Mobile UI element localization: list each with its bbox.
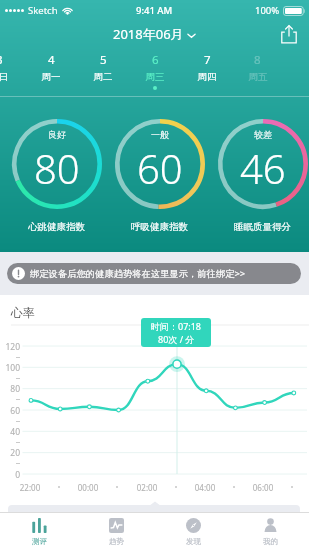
staticText: 时间：07:18 (151, 320, 202, 332)
staticText: 周一 (31, 71, 71, 83)
staticText: 100% (255, 4, 280, 17)
staticText: 5 (100, 52, 107, 68)
staticText: 呼吸健康指数 (131, 221, 188, 233)
staticText: 2018年06月 (113, 25, 184, 43)
staticText: 04:00 (189, 482, 221, 493)
staticText: 睡眠质量得分 (234, 221, 291, 233)
button[interactable]: 6 (129, 48, 181, 96)
staticText: 一般 (151, 129, 169, 140)
button[interactable]: 8 (233, 48, 282, 96)
staticText: 良好 (48, 129, 66, 140)
staticText: 趋势 (109, 537, 124, 546)
staticText: 80次 / 分 (158, 333, 195, 345)
staticText: 心跳健康指数 (28, 221, 85, 233)
button[interactable]: 绑定设备后您的健康趋势将在这里显示，前往绑定>> (7, 263, 301, 284)
staticText: 我的 (263, 537, 278, 546)
staticText: 周五 (238, 71, 278, 83)
staticText: 较差 (254, 129, 272, 140)
button[interactable]: 趋势 (78, 513, 155, 550)
staticText: 22:00 (14, 482, 46, 493)
button[interactable]: 7 (181, 48, 233, 96)
staticText: 周三 (135, 71, 175, 83)
staticText: 60 (137, 141, 183, 195)
staticText: Sketch (28, 4, 58, 17)
staticText: 00:00 (72, 482, 104, 493)
staticText: 100 (0, 362, 20, 374)
staticText: 心率 (11, 305, 35, 320)
staticText: 发现 (186, 537, 201, 546)
staticText: 周日 (0, 71, 19, 83)
button[interactable]: Share (279, 24, 299, 44)
staticText: 周二 (83, 71, 123, 83)
staticText: 20 (0, 447, 20, 459)
staticText: 6 (152, 52, 159, 68)
staticText: 绑定设备后您的健康趋势将在这里显示，前往绑定>> (30, 267, 246, 280)
staticText: 80 (34, 141, 80, 195)
staticText: 周四 (187, 71, 227, 83)
staticText: 测评 (32, 537, 47, 546)
staticText: 06:00 (247, 482, 279, 493)
staticText: 7 (204, 52, 211, 68)
button[interactable]: 5 (77, 48, 129, 96)
button[interactable]: 2018年06月 (113, 25, 196, 43)
staticText: 60 (0, 405, 20, 417)
button[interactable]: 4 (25, 48, 77, 96)
staticText: 0 (0, 469, 20, 481)
button[interactable]: 发现 (155, 513, 232, 550)
staticText: 80 (0, 383, 20, 395)
staticText: 8 (254, 52, 261, 68)
button[interactable]: 我的 (232, 513, 309, 550)
staticText: 4 (48, 52, 55, 68)
button[interactable]: 测评 (0, 513, 78, 550)
staticText: 3 (0, 52, 3, 68)
staticText: 120 (0, 341, 20, 353)
staticText: 02:00 (131, 482, 163, 493)
button[interactable]: 3 (0, 48, 25, 96)
staticText: 9:41 AM (136, 4, 173, 17)
staticText: 40 (0, 426, 20, 438)
staticText: 46 (240, 141, 286, 195)
